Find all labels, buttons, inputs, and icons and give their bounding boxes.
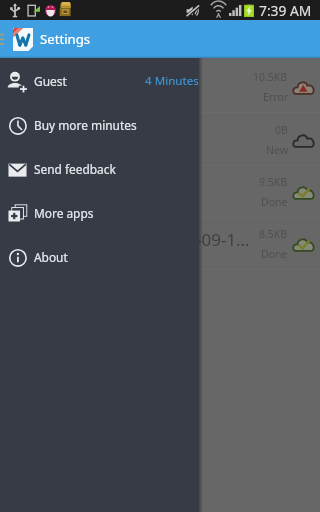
staticText: Done xyxy=(261,195,288,209)
button[interactable]: -09-1… xyxy=(0,218,320,270)
staticText: 10.5KB xyxy=(253,70,288,84)
staticText: 8.5KB xyxy=(259,227,288,241)
button[interactable]: 9.5KB xyxy=(0,166,320,218)
staticText: 7:39 AM xyxy=(259,1,312,20)
staticText: About xyxy=(34,249,68,265)
staticText: More apps xyxy=(34,205,94,221)
button[interactable]: 0B xyxy=(0,113,320,166)
staticText: -09-1… xyxy=(196,228,250,251)
staticText: New xyxy=(266,143,288,157)
staticText: 0B xyxy=(275,123,288,137)
button[interactable]: About xyxy=(0,235,199,279)
staticText: Done xyxy=(261,247,288,261)
button[interactable]: More apps xyxy=(0,191,199,235)
staticText: Buy more minutes xyxy=(34,117,137,133)
button[interactable]: Guest xyxy=(0,59,199,103)
staticText: Send feedback xyxy=(34,161,116,177)
staticText: Error xyxy=(263,90,288,104)
button[interactable]: Buy more minutes xyxy=(0,103,199,147)
button[interactable]: Send feedback xyxy=(0,147,199,191)
button[interactable]: 10.5KB xyxy=(0,61,320,113)
staticText: Settings xyxy=(40,30,91,48)
button[interactable]: Open navigation drawer xyxy=(0,20,10,58)
staticText: Guest xyxy=(34,73,67,89)
staticText: 4 Minutes xyxy=(145,73,199,89)
staticText: 9.5KB xyxy=(259,175,288,189)
